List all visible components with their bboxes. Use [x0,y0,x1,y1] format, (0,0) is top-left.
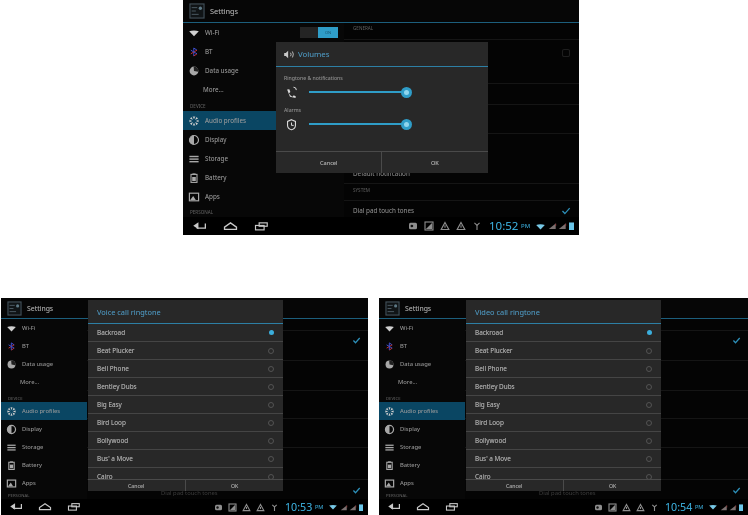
button[interactable]: Apps [1,474,87,492]
button[interactable]: Bus' a Move [466,450,661,467]
staticText: Settings [27,304,54,313]
staticText: Apps [22,479,36,487]
staticText: Cancel [506,482,523,489]
staticText: Bentley Dubs [475,382,515,391]
button[interactable]: Apps [183,187,344,206]
button[interactable]: Recent apps [446,501,458,513]
button[interactable]: OK [382,152,488,173]
button[interactable]: Display [183,130,344,149]
button[interactable]: Beat Plucker [466,342,661,359]
button[interactable]: Wi-Fi [183,23,344,42]
button[interactable]: Vibrate when ringing [344,45,579,60]
button[interactable]: Backroad [466,324,661,341]
button[interactable]: Cairo [88,468,283,485]
staticText: Audio profiles [205,116,246,125]
button[interactable]: Cancel [466,480,563,491]
button[interactable]: Beat Plucker [88,342,283,359]
button[interactable]: OK [564,480,661,491]
button[interactable]: Display [379,420,465,438]
staticText: Bentley Dubs [97,382,137,391]
button[interactable]: Recent apps [68,501,80,513]
button[interactable]: Cairo [466,468,661,485]
button[interactable]: Battery [379,456,465,474]
button[interactable]: Default notification [344,166,579,181]
button[interactable]: Audio profiles [183,111,344,130]
button[interactable] [87,483,368,497]
button[interactable]: Data usage [183,61,344,80]
button[interactable]: Battery [183,168,344,187]
staticText: Cancel [128,482,145,489]
button[interactable]: Bentley Dubs [466,378,661,395]
staticText: 10:54 [665,500,693,515]
staticText: GENERAL [353,25,374,31]
button[interactable]: Apps [379,474,465,492]
button[interactable]: Bentley Dubs [88,378,283,395]
button[interactable]: BT [183,42,344,61]
staticText: Wi-Fi [205,28,220,37]
staticText: Data usage [205,66,239,75]
button[interactable]: Storage [1,438,87,456]
staticText: Big Easy [97,400,122,409]
button[interactable]: Storage [379,438,465,456]
staticText: Wi-Fi [400,324,414,332]
button[interactable]: Storage [183,149,344,168]
button[interactable]: Data usage [379,355,465,373]
button[interactable]: Dial pad touch tones [344,203,579,218]
staticText: PERSONAL [386,492,408,498]
button[interactable]: Display [1,420,87,438]
staticText: Beat Plucker [97,346,135,355]
staticText: 10:52 [489,218,519,234]
button[interactable]: BT [379,337,465,355]
staticText: Big Easy [475,400,500,409]
button[interactable]: Bus' a Move [88,450,283,467]
staticText: ON [325,30,332,35]
button[interactable]: Audio profiles [1,402,87,420]
staticText: Bus' a Move [475,454,511,463]
staticText: BT [22,342,30,350]
button[interactable]: Big Easy [88,396,283,413]
staticText: Bell Phone [475,364,507,373]
button[interactable]: Back [388,501,400,513]
button[interactable]: Back [193,220,206,233]
button[interactable] [87,333,368,347]
button[interactable]: More... [379,373,465,391]
button[interactable]: Home [417,501,429,513]
button[interactable]: Battery [1,456,87,474]
staticText: More... [203,85,224,94]
button[interactable]: Home [224,220,237,233]
staticText: Bird Loop [475,418,504,427]
staticText: Battery [22,461,42,469]
button[interactable]: Home [39,501,51,513]
staticText: Dial pad touch tones [161,489,218,497]
staticText: Apps [400,479,414,487]
button[interactable]: Bollywood [466,432,661,449]
button[interactable]: More... [183,80,344,99]
staticText: 10:53 [285,500,313,515]
button[interactable]: BT [1,337,87,355]
button[interactable]: Backroad [88,324,283,341]
button[interactable]: Audio profiles [379,402,465,420]
button[interactable]: Back [10,501,22,513]
button[interactable]: Recent apps [255,220,268,233]
staticText: Battery [400,461,420,469]
staticText: Beat Plucker [475,346,513,355]
button[interactable]: More... [1,373,87,391]
button[interactable] [465,483,748,497]
button[interactable]: Big Easy [466,396,661,413]
staticText: PERSONAL [8,492,30,498]
button[interactable]: Bird Loop [466,414,661,431]
staticText: Default notification [353,169,410,178]
button[interactable]: Wi-Fi [379,319,465,337]
button[interactable]: Bell Phone [466,360,661,377]
button[interactable]: Data usage [1,355,87,373]
button[interactable]: Wi-Fi [1,319,87,337]
button[interactable]: Cancel [88,480,185,491]
button[interactable]: Bell Phone [88,360,283,377]
button[interactable]: Bollywood [88,432,283,449]
staticText: Bollywood [97,436,129,445]
button[interactable]: OK [186,480,283,491]
button[interactable] [465,333,748,347]
button[interactable]: Cancel [276,152,381,173]
button[interactable]: Bird Loop [88,414,283,431]
staticText: OK [431,159,439,167]
